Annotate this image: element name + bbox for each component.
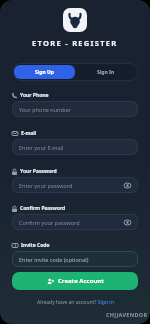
button[interactable]: Enter invite code (optional) xyxy=(12,251,138,267)
button[interactable]: Already have an account? Sign in xyxy=(37,299,114,306)
staticText: Your Phone xyxy=(20,92,49,99)
button[interactable]: Your phone number xyxy=(12,101,138,117)
button[interactable]: Confirm your password xyxy=(12,214,138,230)
staticText: Enter invite code (optional) xyxy=(19,256,89,263)
staticText: Invite Code xyxy=(21,242,50,249)
staticText: Enter your E-mail xyxy=(19,144,64,151)
staticText: ETORE - REGISTER xyxy=(32,38,118,48)
staticText: Confirm your password xyxy=(19,219,80,226)
staticText: Confirm Password xyxy=(20,205,66,212)
button[interactable]: Enter your E-mail xyxy=(12,139,138,155)
button[interactable]: Sign In xyxy=(75,65,136,79)
staticText: Your phone number xyxy=(19,106,72,113)
staticText: Enter your password xyxy=(19,182,73,189)
staticText: Your Password xyxy=(20,168,57,175)
staticText: Sign In xyxy=(97,69,115,76)
button[interactable]: Sign Up xyxy=(14,65,75,79)
staticText: _______ xyxy=(122,318,132,322)
staticText: Sign Up xyxy=(35,69,54,76)
staticText: CHJJAVENDOR xyxy=(106,311,148,318)
button[interactable]: Create Account xyxy=(12,272,138,290)
staticText: Create Account xyxy=(58,277,104,285)
button[interactable]: Enter your password xyxy=(12,177,138,193)
staticText: E-mail xyxy=(21,130,37,137)
